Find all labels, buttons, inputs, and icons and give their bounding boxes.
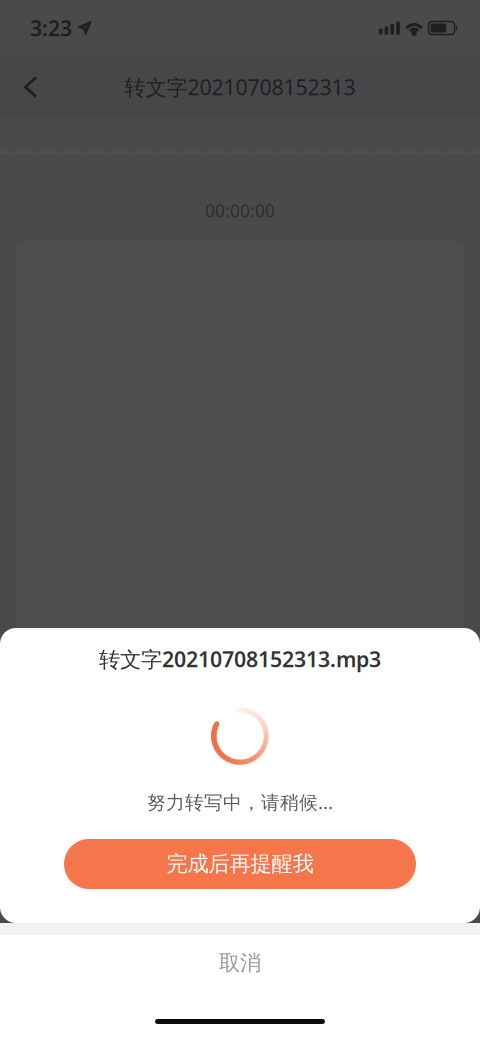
staticText: 取消 bbox=[219, 950, 261, 976]
button[interactable]: Back bbox=[0, 62, 55, 112]
staticText: 完成后再提醒我 bbox=[166, 851, 313, 877]
staticText: 努力转写中，请稍候... bbox=[147, 790, 333, 814]
staticText: 00:00:00 bbox=[205, 199, 275, 222]
staticText: 转文字20210708152313.mp3 bbox=[99, 645, 381, 673]
button[interactable]: 取消 bbox=[0, 935, 480, 991]
staticText: 3:23 bbox=[30, 14, 72, 42]
button[interactable]: 完成后再提醒我 bbox=[64, 839, 416, 889]
staticText: 转文字20210708152313 bbox=[124, 73, 355, 101]
